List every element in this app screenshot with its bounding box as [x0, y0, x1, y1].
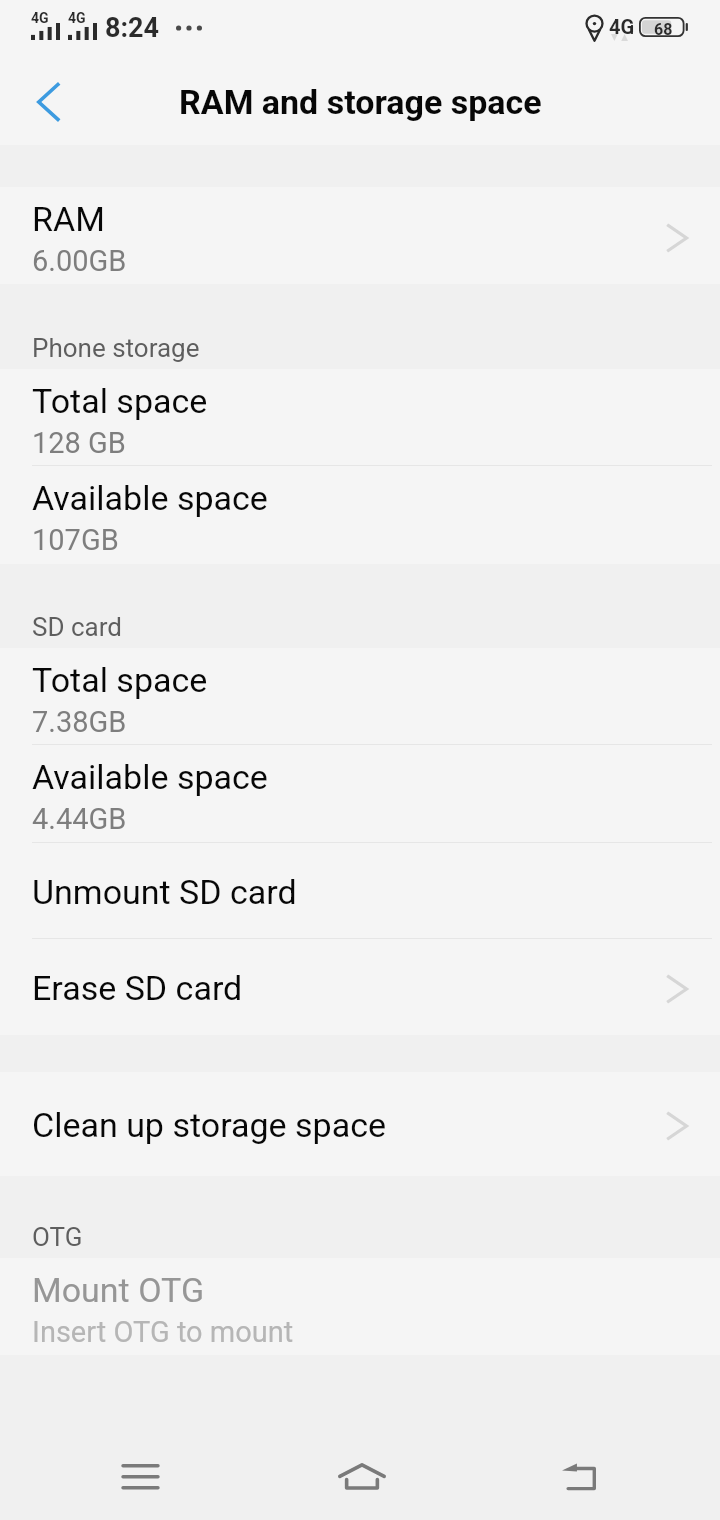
- button[interactable]: Unmount SD card: [0, 843, 720, 939]
- staticText: Mount OTG: [32, 1270, 205, 1310]
- staticText: 4.44GB: [32, 802, 127, 836]
- staticText: Total space: [32, 381, 208, 421]
- staticText: Available space: [32, 478, 268, 518]
- button[interactable]: Clean up storage space: [0, 1072, 720, 1176]
- button[interactable]: Back: [506, 1432, 651, 1520]
- button[interactable]: Erase SD card: [0, 939, 720, 1035]
- staticText: RAM: [32, 199, 105, 239]
- button[interactable]: Available space: [0, 745, 720, 843]
- staticText: Phone storage: [32, 333, 200, 363]
- staticText: 128 GB: [32, 426, 126, 460]
- staticText: Erase SD card: [32, 968, 243, 1008]
- staticText: 107GB: [32, 523, 119, 557]
- staticText: 7.38GB: [32, 705, 127, 739]
- button[interactable]: Available space: [0, 466, 720, 564]
- button[interactable]: RAM: [0, 187, 720, 284]
- staticText: Clean up storage space: [32, 1105, 386, 1145]
- staticText: RAM and storage space: [179, 82, 542, 122]
- button[interactable]: Home: [289, 1432, 434, 1520]
- staticText: 4G: [31, 10, 49, 26]
- button[interactable]: Total space: [0, 648, 720, 745]
- button[interactable]: Back: [0, 58, 96, 145]
- staticText: SD card: [32, 612, 122, 642]
- button[interactable]: Mount OTG: [0, 1258, 720, 1355]
- staticText: Available space: [32, 757, 268, 797]
- button[interactable]: Recent apps: [68, 1432, 213, 1520]
- staticText: 68: [654, 20, 673, 39]
- staticText: 8:24: [105, 12, 160, 44]
- staticText: 4G: [609, 15, 635, 38]
- button[interactable]: Total space: [0, 369, 720, 466]
- staticText: 6.00GB: [32, 244, 127, 278]
- staticText: Total space: [32, 660, 208, 700]
- staticText: Insert OTG to mount: [32, 1315, 294, 1349]
- staticText: OTG: [32, 1222, 83, 1252]
- staticText: 4G: [68, 10, 86, 26]
- staticText: Unmount SD card: [32, 872, 297, 912]
